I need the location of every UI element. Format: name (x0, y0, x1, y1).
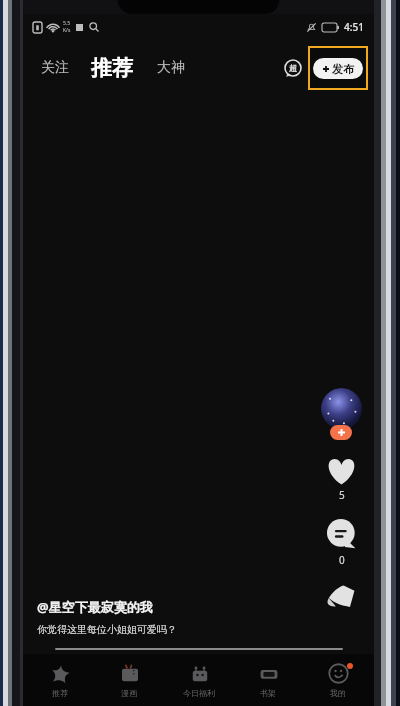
button[interactable]: 点赞 5 (324, 456, 359, 502)
staticText: 超 (289, 63, 297, 73)
button[interactable]: 我的 (305, 659, 371, 701)
staticText: 书架 (260, 688, 276, 698)
staticText: 发布 (332, 62, 354, 76)
button[interactable]: 推荐 (87, 53, 137, 83)
staticText: 4:51 (344, 20, 364, 34)
staticText: K/s (63, 27, 71, 34)
staticText: 关注 (41, 59, 69, 77)
staticText: 今日福利 (183, 688, 215, 698)
staticText: 推荐 (52, 688, 68, 698)
button[interactable]: 书架 (235, 659, 301, 701)
button[interactable]: 分享 (323, 581, 359, 611)
button[interactable]: 超级会员 (284, 59, 302, 77)
staticText: @星空下最寂寞的我 (37, 598, 153, 616)
staticText: 5 (339, 488, 345, 502)
button[interactable]: 漫画 (96, 659, 162, 701)
staticText: 推荐 (91, 55, 133, 81)
button[interactable]: 推荐 (27, 659, 93, 701)
button[interactable]: 评论 0 (325, 518, 358, 567)
button[interactable]: 大神 (153, 53, 189, 83)
staticText: 漫画 (121, 688, 137, 698)
staticText: 我的 (330, 688, 346, 698)
button[interactable]: 今日福利 (166, 659, 232, 701)
staticText: 你觉得这里每位小姐姐可爱吗？ (37, 623, 177, 636)
button[interactable]: 用户头像 关注 (318, 388, 364, 440)
button[interactable]: 发布 (313, 58, 363, 79)
staticText: 大神 (157, 59, 185, 77)
staticText: 0 (339, 553, 345, 567)
staticText: 5.5 (63, 20, 71, 27)
button[interactable]: 关注 (37, 53, 73, 83)
